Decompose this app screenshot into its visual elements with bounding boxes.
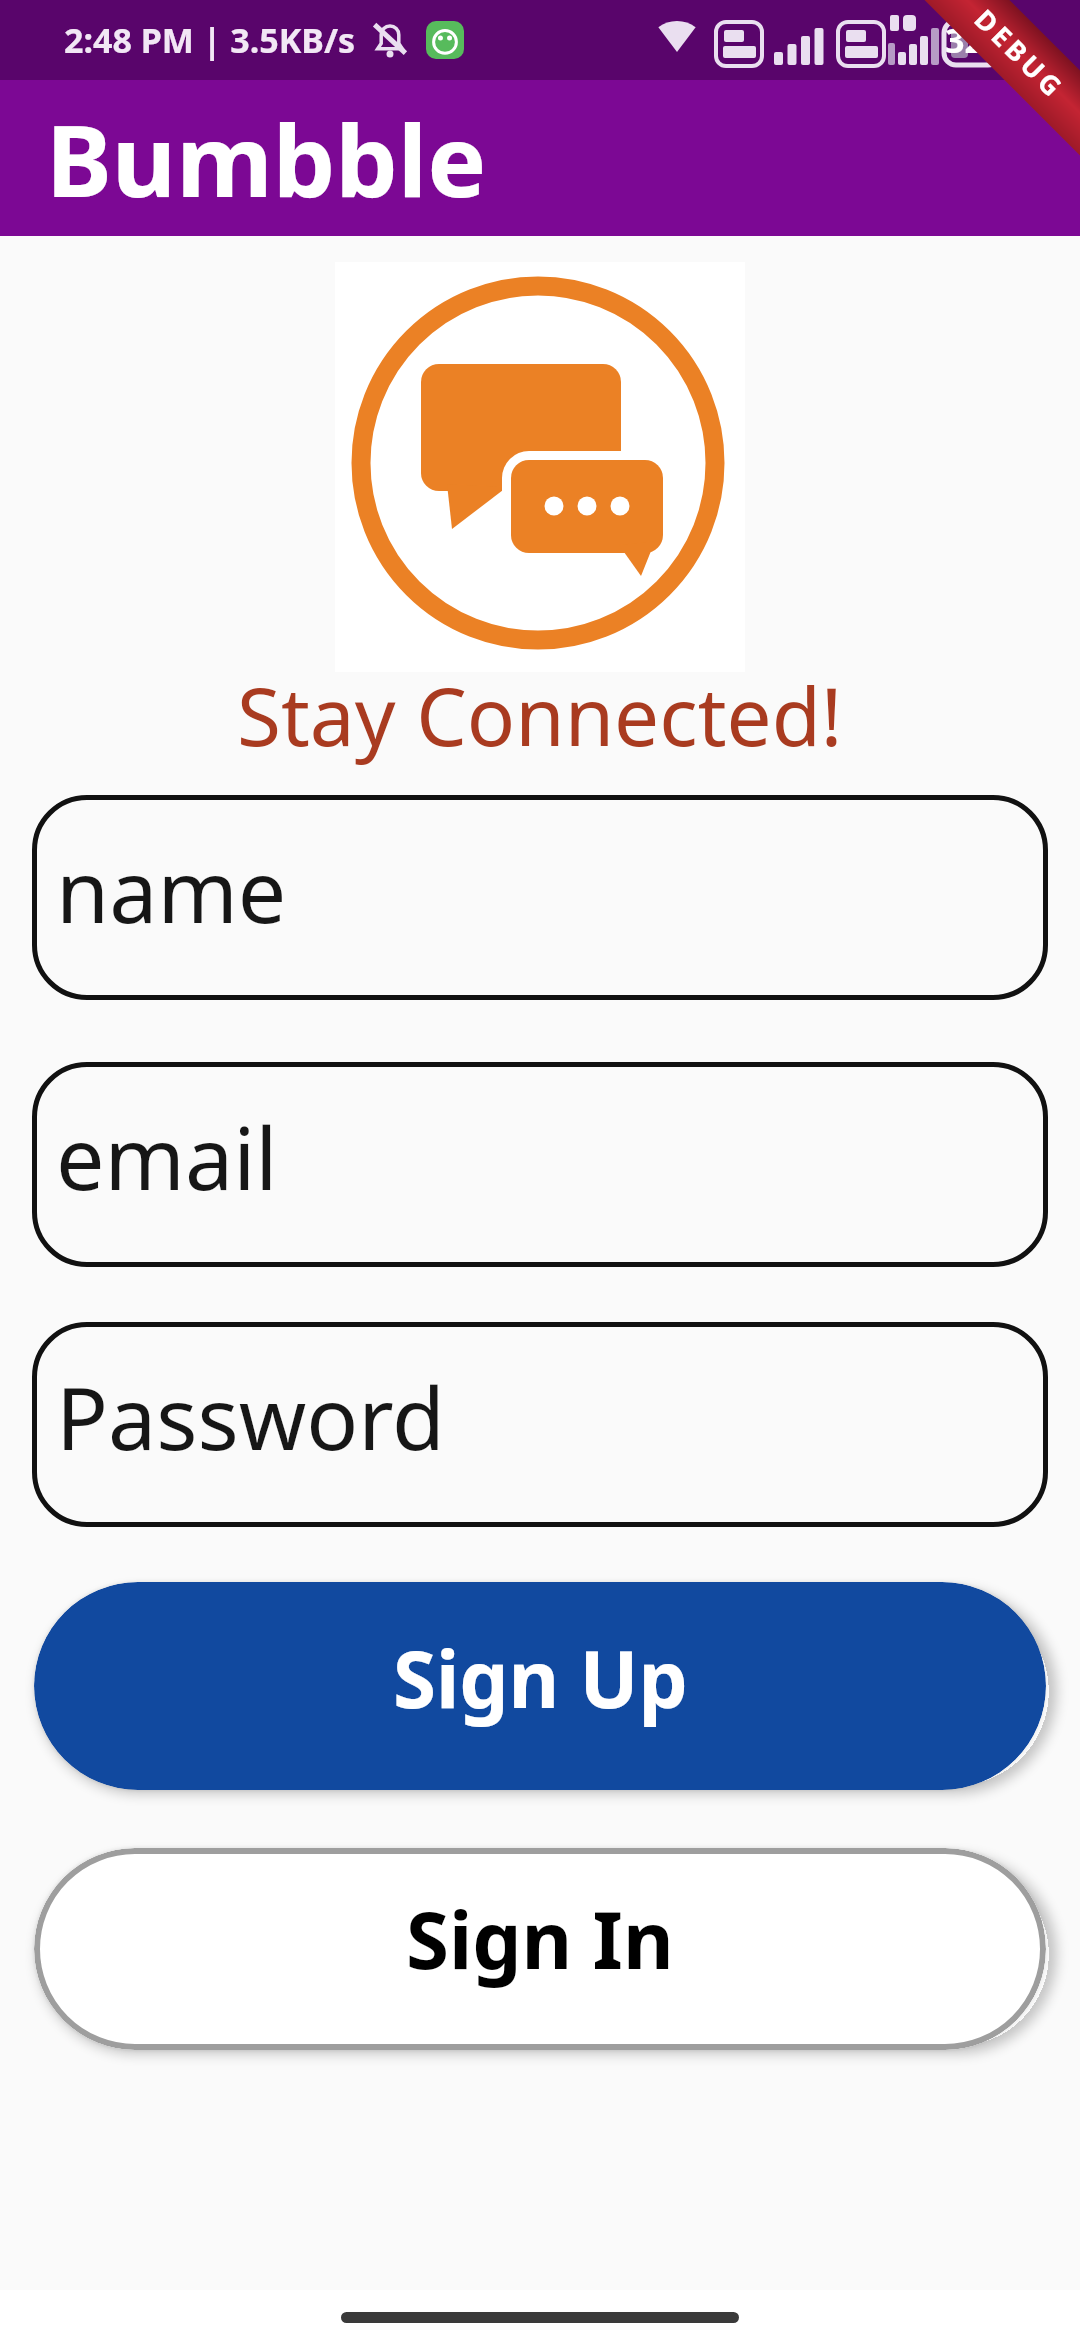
staticText: Sign Up bbox=[393, 1625, 688, 1731]
staticText: DEBUG bbox=[967, 1, 1073, 107]
staticText: email bbox=[56, 1098, 278, 1215]
staticText: Password bbox=[56, 1358, 445, 1475]
staticText: Stay Connected! bbox=[237, 660, 843, 769]
button[interactable]: name bbox=[32, 795, 1048, 1000]
staticText: 32 bbox=[945, 17, 984, 63]
button[interactable]: email bbox=[32, 1062, 1048, 1267]
staticText: 2:48 PM | 3.5KB/s bbox=[64, 17, 356, 63]
staticText: name bbox=[56, 831, 287, 948]
button[interactable]: Sign In bbox=[34, 1848, 1046, 2050]
staticText: Sign In bbox=[406, 1886, 674, 1992]
staticText: Bumbble bbox=[46, 91, 487, 226]
button[interactable]: Sign Up bbox=[34, 1582, 1046, 1790]
button[interactable]: Password bbox=[32, 1322, 1048, 1527]
